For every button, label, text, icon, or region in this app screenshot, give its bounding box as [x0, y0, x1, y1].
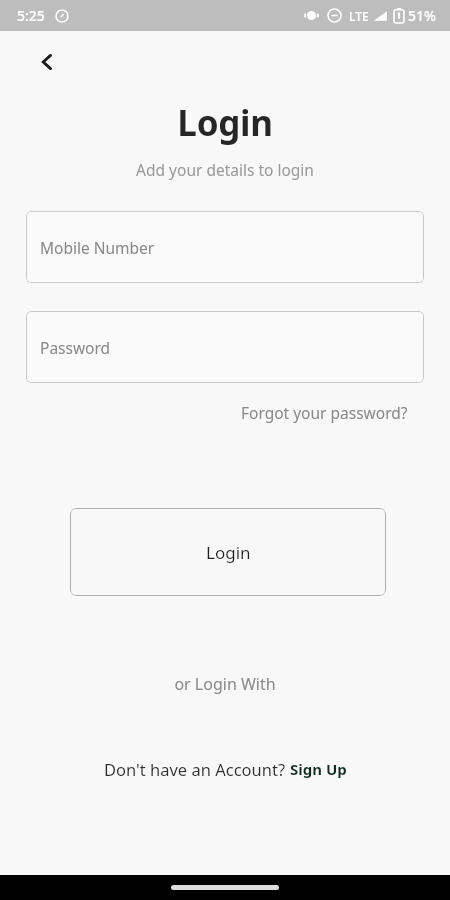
staticText: Sign Up [290, 759, 347, 779]
button[interactable]: Mobile Number [26, 211, 424, 283]
staticText: Login [206, 541, 251, 564]
staticText: Password [40, 337, 111, 358]
button[interactable]: Login [70, 508, 386, 596]
button[interactable]: Back [26, 41, 68, 83]
staticText: 5:25 [17, 6, 45, 25]
staticText: LTE [349, 8, 369, 24]
staticText: or Login With [0, 673, 450, 695]
staticText: Login [0, 99, 450, 147]
button[interactable]: Forgot your password? [239, 398, 410, 427]
staticText: 51% [408, 6, 436, 25]
staticText: Don't have an Account? [104, 758, 290, 780]
button[interactable]: Sign Up [290, 759, 347, 779]
staticText: Add your details to login [0, 159, 450, 180]
staticText: Forgot your password? [241, 402, 408, 423]
button[interactable]: Password [26, 311, 424, 383]
staticText: Mobile Number [40, 237, 155, 258]
